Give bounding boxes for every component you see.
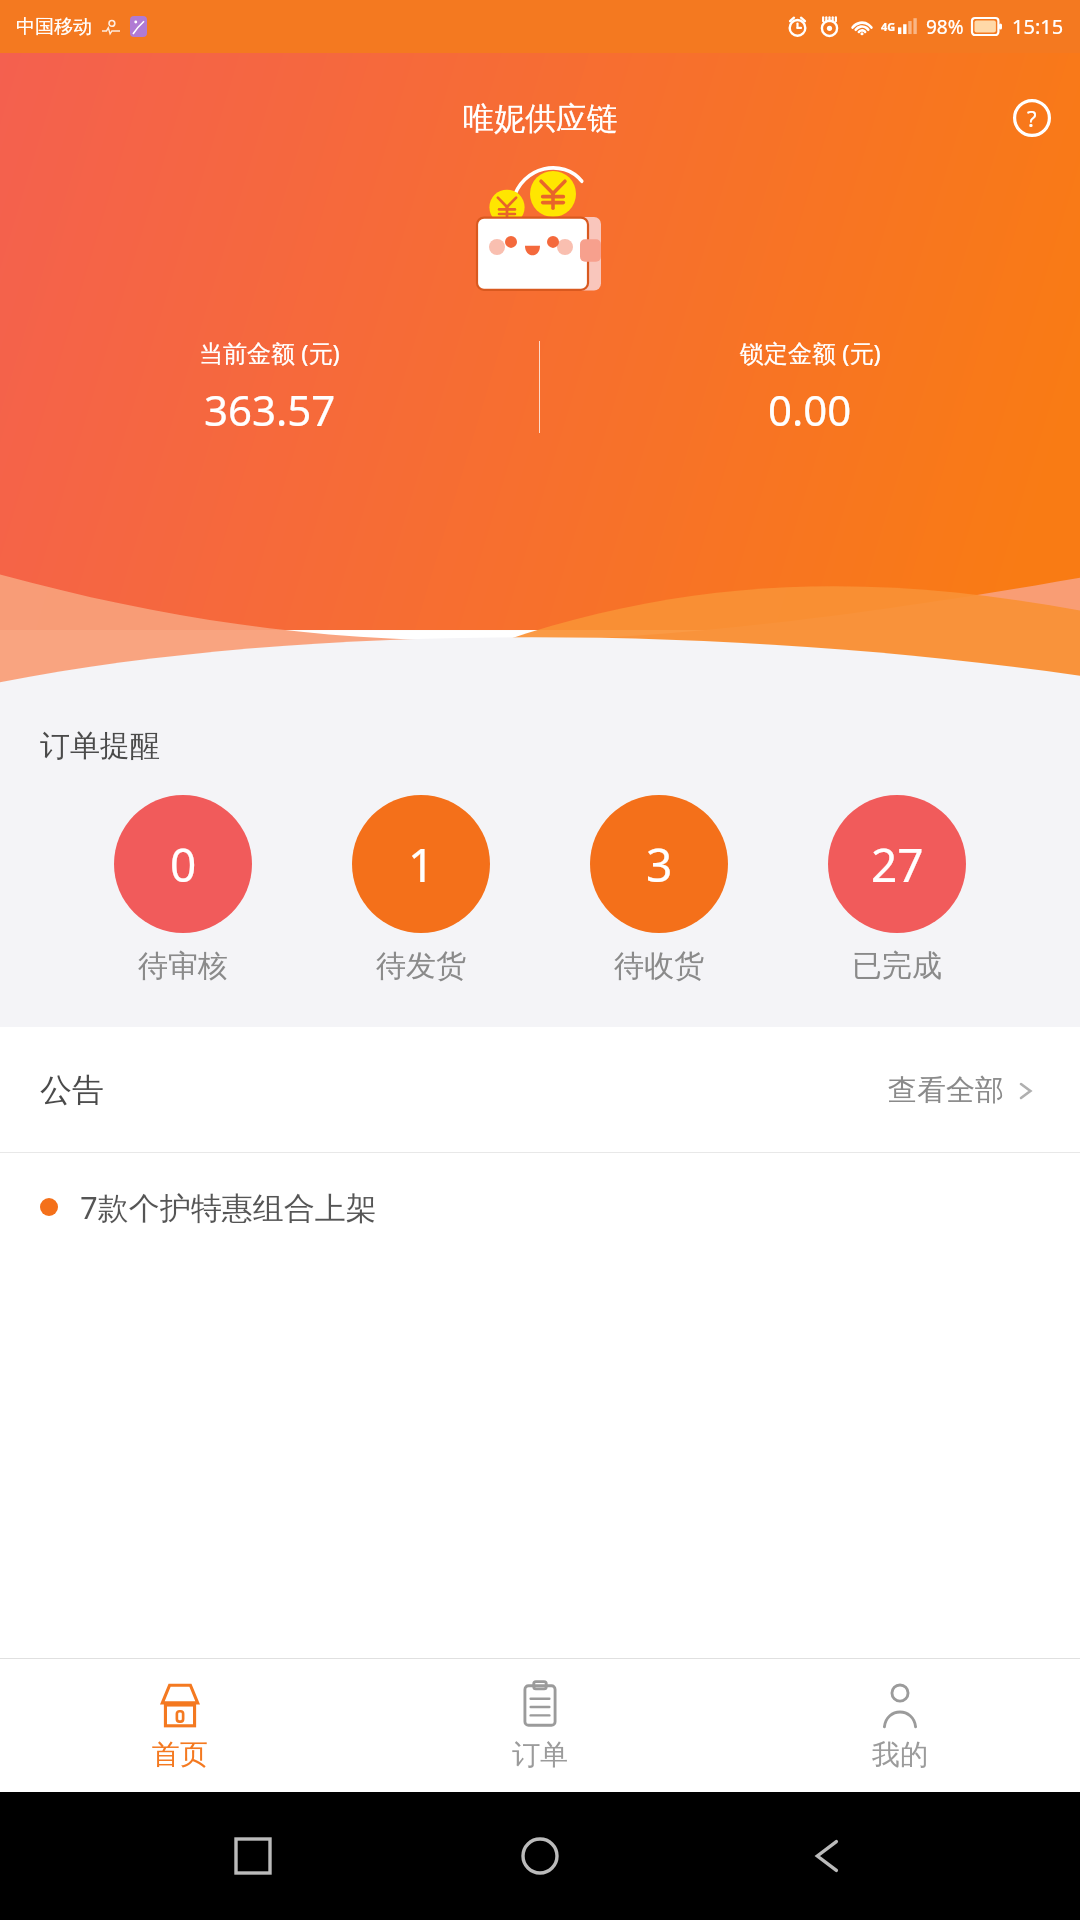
staticText: 3 [646, 833, 673, 896]
button[interactable]: Back [793, 1821, 863, 1891]
button[interactable]: Help [1010, 96, 1054, 140]
staticText: 98% [926, 14, 964, 40]
staticText: 公告 [40, 1070, 104, 1110]
staticText: 查看全部 [888, 1072, 1004, 1109]
staticText: 首页 [152, 1737, 208, 1772]
staticText: 0.00 [768, 381, 852, 438]
staticText: 订单提醒 [40, 727, 160, 765]
staticText: 0 [170, 833, 197, 896]
button[interactable]: 3 [580, 795, 738, 985]
staticText: 待审核 [138, 947, 228, 985]
button[interactable]: Home [505, 1821, 575, 1891]
button[interactable]: 27 [818, 795, 976, 985]
staticText: 7款个护特惠组合上架 [80, 1186, 377, 1228]
staticText: 363.57 [204, 381, 336, 438]
button[interactable]: 0 [104, 795, 262, 985]
staticText: 待发货 [376, 947, 466, 985]
button[interactable]: Recents [218, 1821, 288, 1891]
staticText: 15:15 [1012, 13, 1064, 40]
button[interactable]: 订单 [360, 1659, 720, 1792]
staticText: 唯妮供应链 [463, 99, 618, 138]
button[interactable]: 7款个护特惠组合上架 [0, 1153, 1080, 1261]
staticText: 中国移动 [16, 15, 92, 39]
staticText: 订单 [512, 1737, 568, 1772]
staticText: 已完成 [852, 947, 942, 985]
staticText: 锁定金额 (元) [740, 336, 881, 369]
button[interactable]: 我的 [720, 1659, 1080, 1792]
staticText: 4G [881, 19, 896, 34]
staticText: 27 [871, 833, 924, 896]
staticText: 我的 [872, 1737, 928, 1772]
button[interactable]: 首页 [0, 1659, 360, 1792]
staticText: ? [1027, 103, 1037, 133]
staticText: 1 [408, 833, 435, 896]
button[interactable]: 查看全部 [884, 1064, 1040, 1117]
staticText: 待收货 [614, 947, 704, 985]
staticText: 当前金额 (元) [199, 336, 340, 369]
button[interactable]: 1 [342, 795, 500, 985]
